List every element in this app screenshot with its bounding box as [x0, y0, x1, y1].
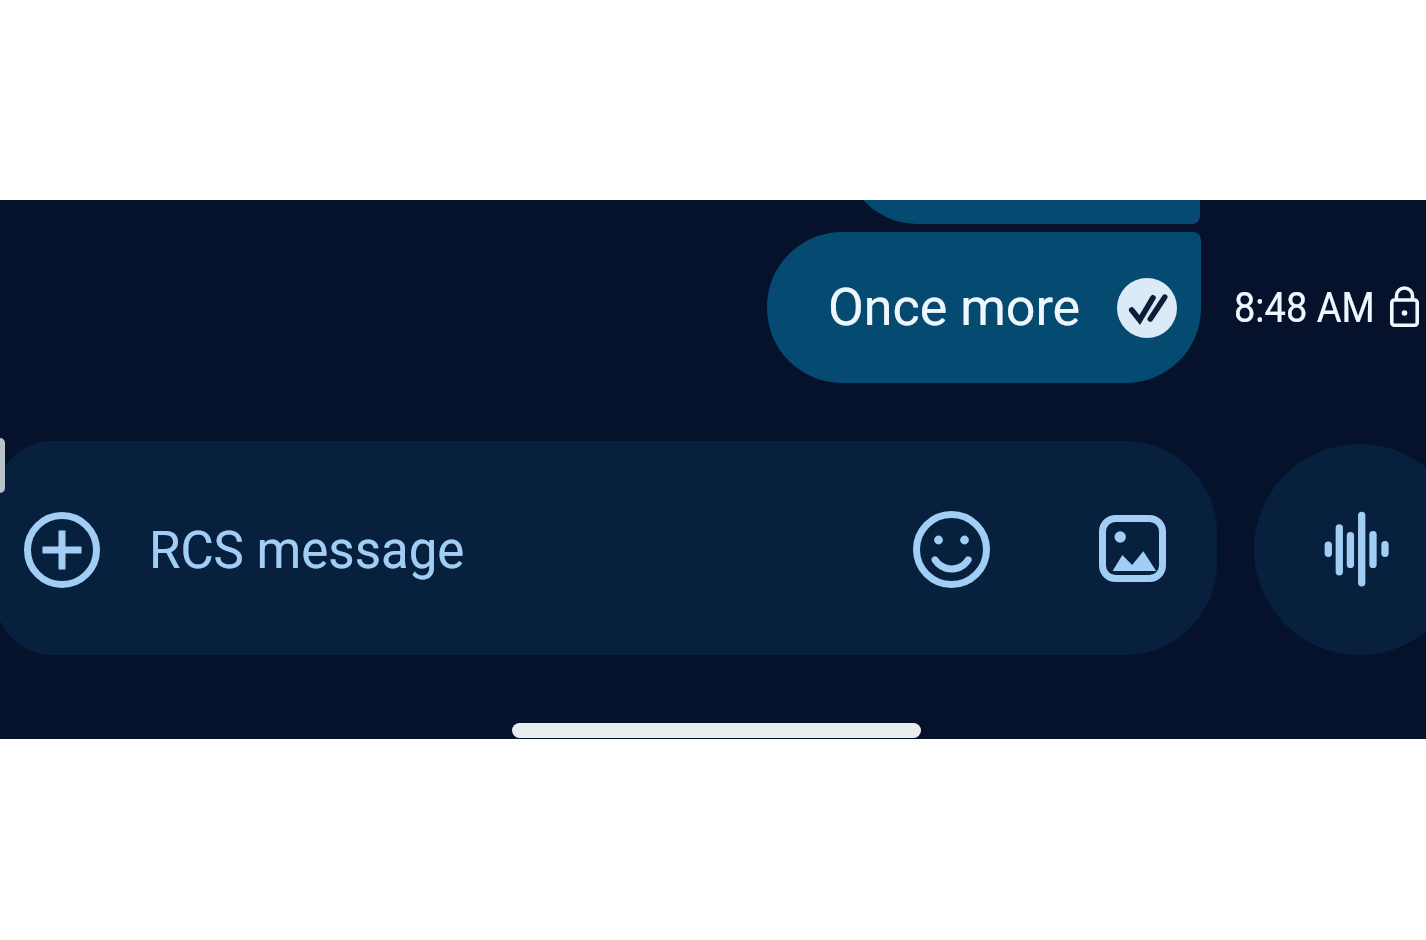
other: End-to-end encrypted	[1390, 286, 1419, 327]
button[interactable]: Emoji	[913, 511, 990, 588]
button[interactable]: Record voice message	[1254, 444, 1426, 655]
staticText: RCS message	[149, 521, 465, 581]
staticText: 8:48 AM	[1234, 283, 1375, 332]
button[interactable]	[0, 441, 1217, 655]
button[interactable]: Once more	[767, 232, 1201, 383]
button[interactable]: Gallery	[1099, 515, 1166, 582]
button[interactable]: Add attachment	[24, 512, 100, 588]
staticText: Once more	[828, 277, 1081, 338]
